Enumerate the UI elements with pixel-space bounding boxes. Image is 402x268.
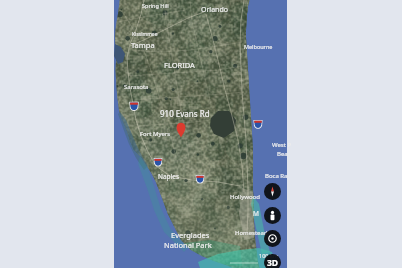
staticText: Sarasota [124,83,149,91]
staticText: Orlando [201,5,228,15]
staticText: West P [272,141,292,149]
staticText: Bea [277,150,288,158]
staticText: Fort Myers [140,130,171,138]
button[interactable]: Spring Hill [114,0,287,268]
staticText: Naples [158,172,180,181]
staticText: 100 km [259,252,278,259]
staticText: 910 Evans Rd [160,108,210,119]
staticText: Kissimmee [132,31,158,38]
button[interactable]: 3D view [264,254,281,268]
staticText: Tampa [131,40,155,50]
staticText: Spring Hill [142,2,169,9]
staticText: Homestead [235,229,268,237]
staticText: Everglades [171,230,210,240]
button[interactable]: Street View [264,207,281,224]
staticText: Melbourne [244,43,273,50]
staticText: Boca Ra [265,172,288,180]
staticText: National Park [164,240,212,250]
staticText: M [253,209,259,218]
button[interactable]: My location [264,230,281,247]
staticText: 3D [267,257,279,268]
staticText: FLORIDA [164,60,195,70]
staticText: Hollywood [230,193,260,201]
button[interactable]: Compass [264,183,281,200]
